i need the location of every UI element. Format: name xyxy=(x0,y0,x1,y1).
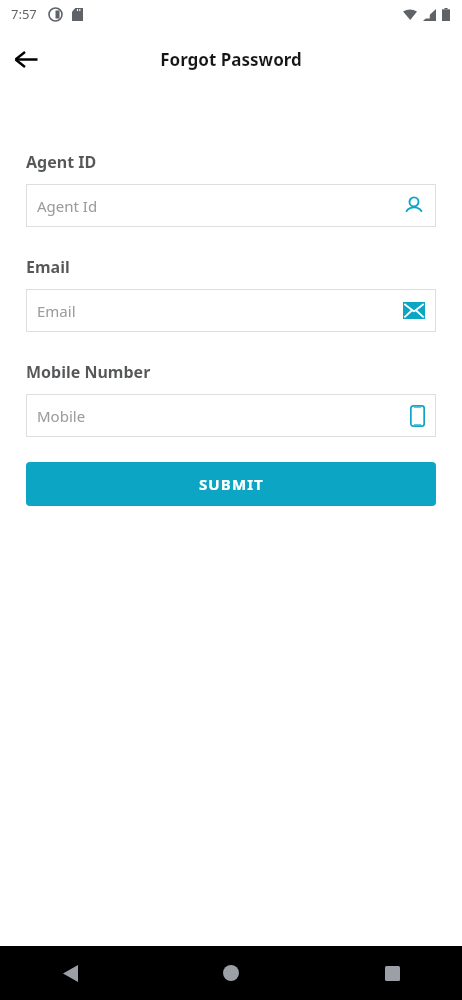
staticText: Mobile xyxy=(37,406,410,426)
button[interactable]: Home xyxy=(207,949,255,997)
staticText: Agent Id xyxy=(37,196,403,216)
staticText: Forgot Password xyxy=(160,48,302,71)
button[interactable]: Agent Id xyxy=(26,184,436,227)
button[interactable]: Recent apps xyxy=(368,949,416,997)
staticText: Mobile Number xyxy=(26,361,151,383)
button[interactable]: Email xyxy=(26,289,436,332)
button[interactable]: SUBMIT xyxy=(26,462,436,506)
staticText: Agent ID xyxy=(26,151,97,173)
staticText: 7:57 xyxy=(11,5,37,23)
staticText: SUBMIT xyxy=(199,474,264,494)
staticText: Email xyxy=(37,301,403,321)
button[interactable]: Mobile xyxy=(26,394,436,437)
button[interactable]: Back xyxy=(6,39,46,79)
staticText: Email xyxy=(26,256,70,278)
button[interactable]: Back xyxy=(46,949,94,997)
